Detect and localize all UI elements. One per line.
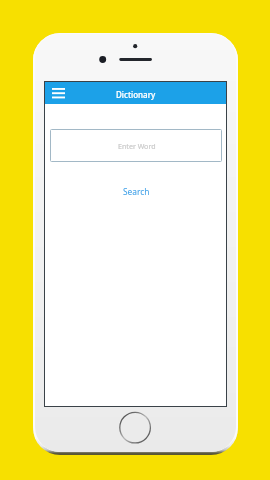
staticText: Enter Word bbox=[118, 141, 156, 151]
button[interactable]: Enter Word bbox=[50, 129, 222, 162]
staticText: Dictionary bbox=[116, 89, 156, 100]
button[interactable]: Open navigation menu bbox=[47, 83, 69, 105]
button[interactable]: Search bbox=[118, 184, 155, 199]
staticText: Search bbox=[123, 186, 150, 197]
